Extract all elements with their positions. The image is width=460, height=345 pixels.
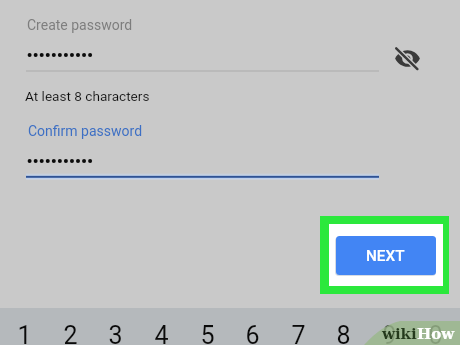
staticText: 5 — [200, 321, 215, 345]
staticText: 2 — [63, 321, 78, 345]
button[interactable]: 6 — [229, 308, 275, 345]
staticText: Confirm password — [28, 123, 143, 139]
button[interactable]: NEXT — [336, 236, 436, 275]
button[interactable]: Confirm password — [24, 116, 381, 180]
staticText: 1 — [17, 321, 32, 345]
button[interactable]: 7 — [275, 308, 321, 345]
button[interactable]: Create password — [24, 8, 381, 72]
staticText: How — [417, 325, 455, 343]
button[interactable]: 1 — [1, 308, 47, 345]
button[interactable]: 8 — [320, 308, 366, 345]
staticText: At least 8 characters — [25, 88, 150, 104]
staticText: 4 — [154, 321, 169, 345]
staticText: 6 — [245, 321, 260, 345]
staticText: wiki — [382, 325, 417, 343]
button[interactable]: 2 — [47, 308, 93, 345]
button[interactable]: 3 — [92, 308, 138, 345]
staticText: Create password — [27, 17, 133, 33]
button[interactable]: 4 — [138, 308, 184, 345]
staticText: 3 — [108, 321, 123, 345]
button[interactable]: 0 — [412, 308, 458, 345]
staticText: 0 — [428, 321, 443, 345]
staticText: 7 — [291, 321, 306, 345]
button[interactable]: 9 — [366, 308, 412, 345]
staticText: 9 — [382, 321, 397, 345]
button[interactable]: 5 — [184, 308, 230, 345]
staticText: 8 — [336, 321, 351, 345]
button[interactable]: Show password — [392, 43, 422, 73]
staticText: NEXT — [366, 247, 405, 265]
